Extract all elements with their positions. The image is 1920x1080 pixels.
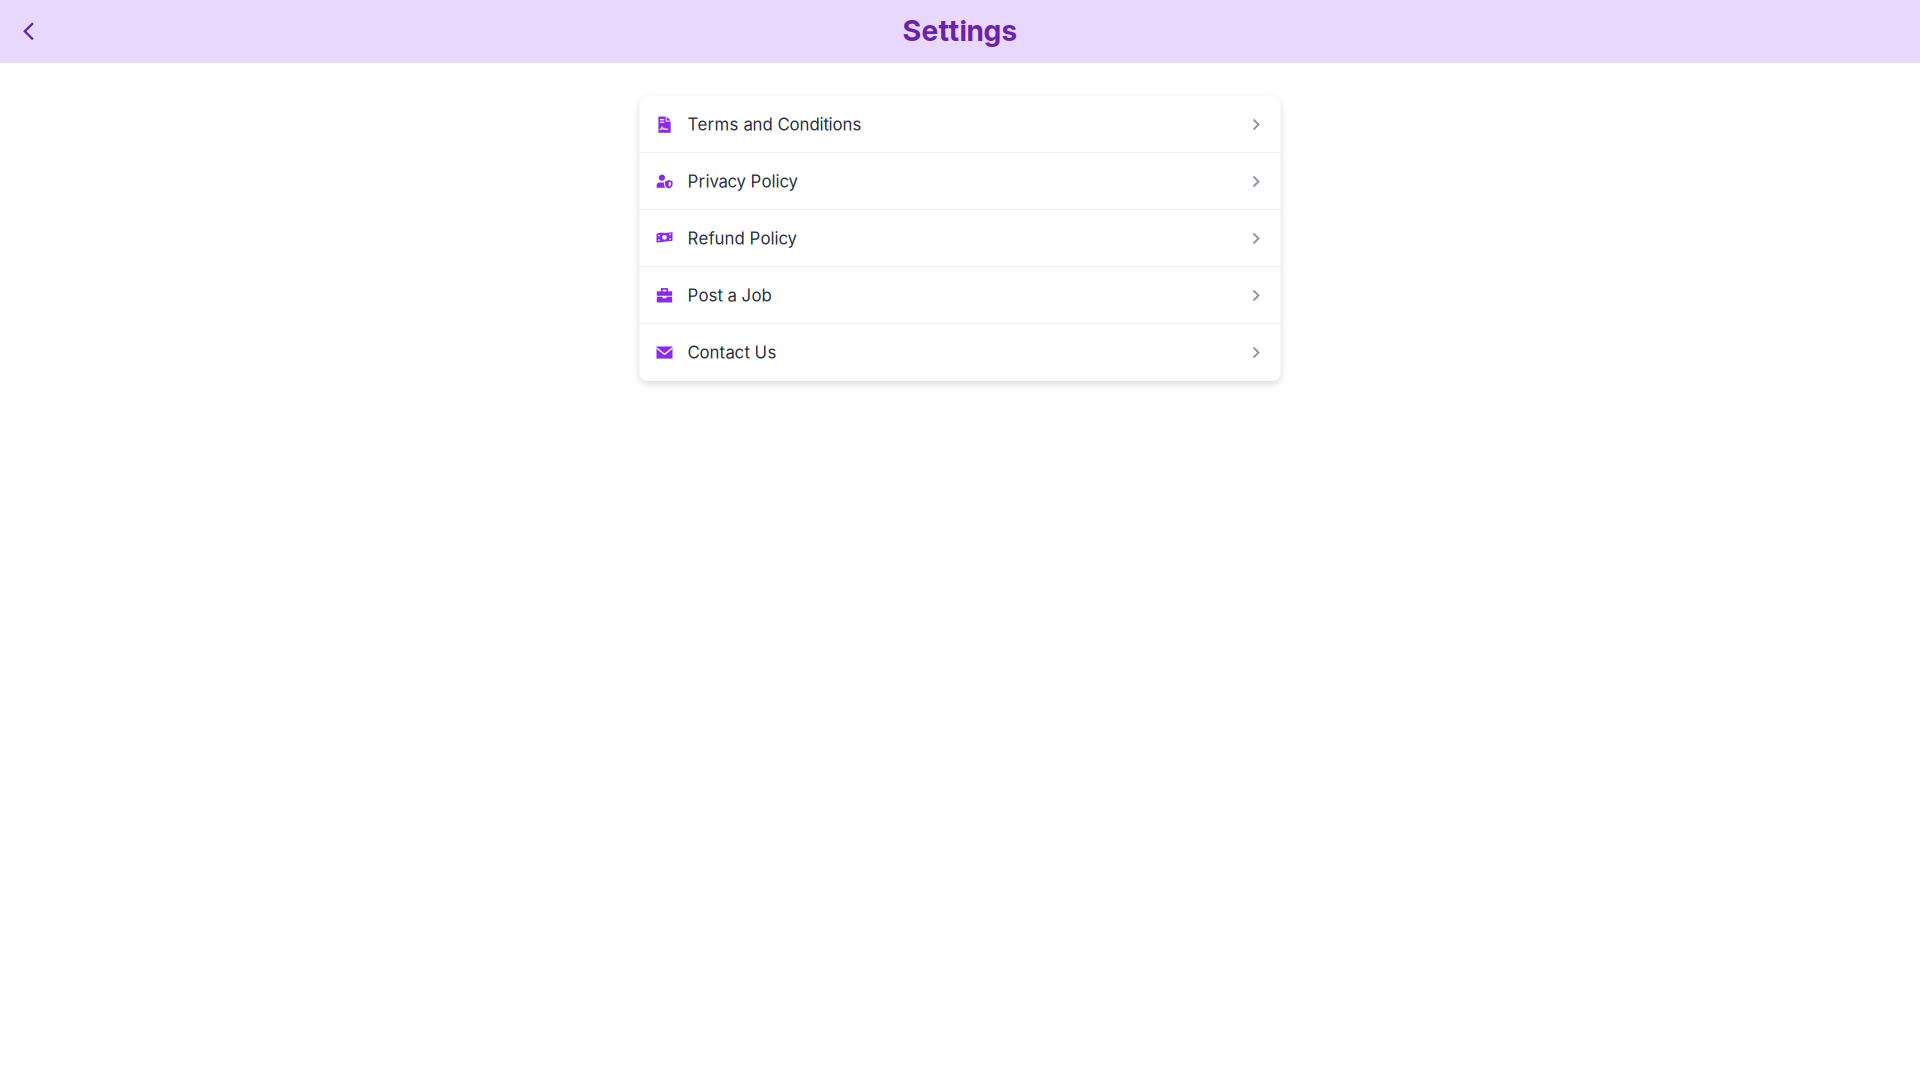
staticText: Contact Us (687, 342, 776, 363)
button[interactable]: Privacy Policy (639, 153, 1280, 210)
staticText: Refund Policy (687, 228, 796, 249)
button[interactable]: Contact Us (639, 324, 1280, 381)
staticText: Terms and Conditions (687, 114, 861, 135)
button[interactable]: Post a Job (639, 267, 1280, 324)
button[interactable]: Refund Policy (639, 210, 1280, 267)
staticText: Post a Job (687, 285, 771, 306)
button[interactable]: Back (9, 9, 49, 53)
button[interactable]: Terms and Conditions (639, 96, 1280, 153)
staticText: Settings (902, 13, 1017, 48)
staticText: Privacy Policy (687, 171, 797, 192)
